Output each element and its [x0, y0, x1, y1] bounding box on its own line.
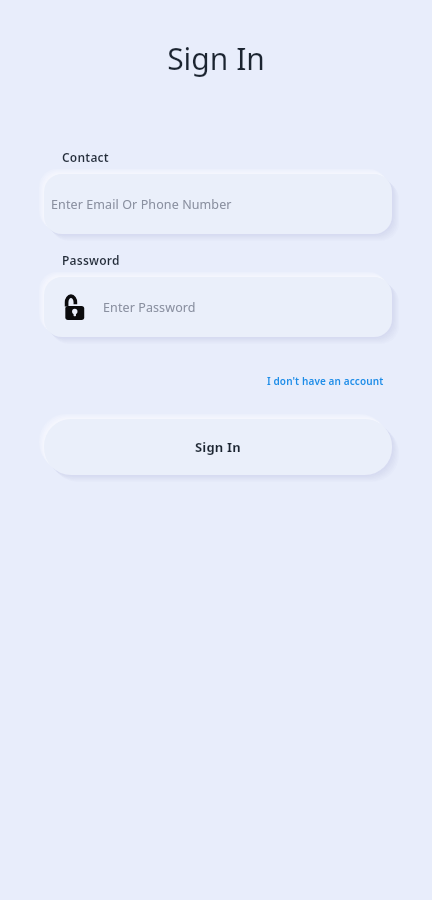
staticText: Contact — [62, 149, 109, 165]
staticText: Sign In — [195, 438, 242, 456]
button[interactable]: I don't have an account — [265, 371, 386, 391]
staticText: Sign In — [167, 38, 265, 79]
staticText: I don't have an account — [267, 374, 384, 388]
button[interactable]: Enter Email Or Phone Number — [44, 174, 392, 234]
button[interactable]: Sign In — [44, 419, 392, 475]
staticText: Password — [62, 252, 120, 268]
other: Password lock — [61, 294, 88, 321]
staticText: Enter Email Or Phone Number — [51, 196, 232, 213]
button[interactable]: Password lock — [44, 277, 392, 337]
staticText: Enter Password — [103, 299, 196, 316]
